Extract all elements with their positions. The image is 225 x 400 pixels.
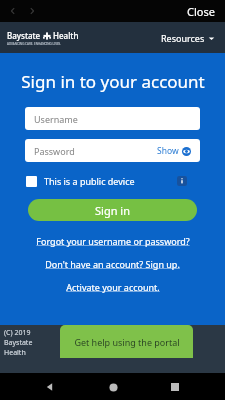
staticText: Sign in (95, 203, 130, 218)
staticText: Activate your account. (66, 281, 160, 293)
staticText: Don't have an account? Sign up. (45, 258, 180, 270)
button[interactable]: Back (8, 6, 18, 16)
button[interactable]: Home (101, 375, 125, 399)
staticText: Resources (161, 32, 205, 44)
staticText: Health (53, 30, 79, 41)
staticText: Health (4, 348, 26, 358)
button[interactable]: Username (25, 107, 200, 130)
button[interactable]: Get help using the portal (60, 325, 193, 358)
button[interactable]: Forward (27, 6, 37, 16)
staticText: Password (34, 145, 75, 157)
staticText: Baystate (7, 30, 41, 41)
button[interactable]: This is a public device (26, 175, 135, 187)
button[interactable]: Resources (161, 32, 215, 44)
button[interactable]: Don't have an account? Sign up. (0, 258, 225, 270)
button[interactable]: Baystate (7, 30, 79, 46)
staticText: Baystate (4, 338, 33, 348)
button[interactable]: Sign in (28, 199, 197, 221)
button[interactable]: Close (177, 2, 225, 21)
staticText: (C) 2019 (4, 328, 31, 338)
staticText: ADVANCING CARE. ENHANCING LIVES. (7, 42, 62, 46)
staticText: Show (157, 145, 179, 157)
button[interactable]: More information (177, 176, 187, 186)
staticText: Username (34, 113, 78, 125)
staticText: Close (187, 4, 215, 19)
button[interactable]: Recent apps (163, 375, 187, 399)
staticText: Sign in to your account (21, 70, 205, 93)
staticText: Get help using the portal (74, 336, 180, 348)
button[interactable]: Password (25, 139, 200, 162)
staticText: Forgot your username or password? (36, 235, 190, 247)
button[interactable]: Back (38, 375, 62, 399)
button[interactable]: Activate your account. (0, 281, 225, 293)
staticText: This is a public device (44, 175, 135, 187)
button[interactable]: Forgot your username or password? (0, 235, 225, 247)
button[interactable]: Show (157, 145, 191, 157)
